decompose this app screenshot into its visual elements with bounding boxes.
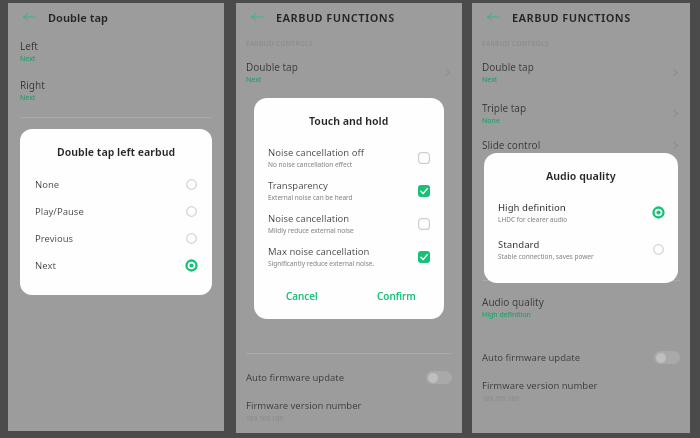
staticText: Auto firmware update (482, 351, 654, 364)
staticText: Triple tap (482, 101, 527, 115)
staticText: Double tap (246, 60, 298, 74)
staticText: Next (246, 75, 262, 85)
staticText: Audio quality (482, 295, 544, 309)
button[interactable]: Firmware version number (236, 399, 462, 423)
button[interactable]: Next (20, 252, 212, 279)
staticText: Transparency (268, 179, 328, 192)
button[interactable]: Audio quality (472, 291, 690, 324)
button[interactable]: Noise cancellation (254, 207, 444, 240)
button[interactable]: Back (18, 6, 40, 28)
staticText: Left (20, 39, 38, 53)
other: Back (250, 10, 264, 24)
staticText: Next (482, 75, 498, 85)
staticText: Previous (35, 232, 186, 245)
staticText: High definition (482, 310, 531, 320)
staticText: Noise cancellation (268, 212, 350, 225)
button[interactable]: Back (482, 6, 504, 28)
button[interactable]: Right (8, 78, 224, 103)
staticText: EARBUD CONTROLS (482, 39, 549, 48)
other: Back (22, 10, 36, 24)
button[interactable]: Auto firmware update (236, 366, 462, 389)
button[interactable]: Standard (484, 234, 678, 265)
button[interactable]: Cancel (254, 283, 349, 309)
staticText: Double tap (48, 10, 109, 25)
staticText: Firmware version number (246, 399, 362, 412)
staticText: Mildly reduce external noise (268, 226, 354, 235)
staticText: Next (20, 93, 36, 103)
staticText: Auto firmware update (246, 371, 426, 384)
staticText: Cancel (286, 289, 318, 303)
staticText: LHDC for clearer audio (498, 215, 568, 224)
button[interactable]: Slide control (472, 138, 690, 152)
button[interactable]: Auto firmware update (472, 346, 690, 369)
staticText: 189.109.109 (482, 394, 519, 403)
button[interactable]: Play/Pause (20, 198, 212, 225)
staticText: Confirm (377, 289, 416, 303)
staticText: Max noise cancellation (268, 245, 370, 258)
staticText: None (35, 178, 186, 191)
staticText: Standard (498, 238, 540, 251)
staticText: Noise cancellation off (268, 146, 364, 159)
button[interactable]: High definition (484, 197, 678, 228)
staticText: EARBUD FUNCTIONS (276, 10, 395, 25)
button[interactable]: Auto firmware update toggle (426, 371, 452, 384)
staticText: Stable connection, saves power (498, 252, 594, 261)
button[interactable]: Noise cancellation off (254, 141, 444, 174)
staticText: 189.109.109 (246, 414, 283, 423)
other: Not selected (186, 206, 197, 217)
staticText: None (482, 116, 500, 126)
other: Not selected (653, 244, 664, 255)
staticText: High definition (498, 201, 566, 214)
button[interactable]: Double tap (236, 56, 462, 89)
staticText: Double tap left earbud (57, 145, 176, 159)
staticText: Right (20, 78, 45, 92)
button[interactable]: Back (246, 6, 268, 28)
staticText: External noise can be heard (268, 193, 353, 202)
button[interactable]: Confirm (349, 283, 444, 309)
other: Selected (186, 260, 197, 271)
staticText: EARBUD FUNCTIONS (512, 10, 631, 25)
other: Not selected (186, 233, 197, 244)
button[interactable]: Max noise cancellation (254, 240, 444, 273)
button[interactable]: Triple tap (472, 97, 690, 130)
staticText: Play/Pause (35, 205, 186, 218)
other: Back (486, 10, 500, 24)
button[interactable]: Auto firmware update toggle (654, 351, 680, 364)
staticText: Firmware version number (482, 379, 598, 392)
button[interactable]: Previous (20, 225, 212, 252)
staticText: Double tap (482, 60, 534, 74)
button[interactable]: Firmware version number (472, 379, 690, 403)
button[interactable]: Left (8, 39, 224, 64)
button[interactable]: Transparency (254, 174, 444, 207)
staticText: Touch and hold (309, 114, 389, 128)
staticText: Significantly reduce external noise. (268, 259, 375, 268)
staticText: Next (20, 54, 36, 64)
other: Not selected (186, 179, 197, 190)
staticText: Slide control (482, 138, 671, 152)
staticText: EARBUD CONTROLS (246, 39, 313, 48)
staticText: Audio quality (546, 169, 616, 183)
staticText: No noise cancellation effect (268, 160, 353, 169)
button[interactable]: None (20, 171, 212, 198)
other: Selected (653, 207, 664, 218)
button[interactable]: Double tap (472, 56, 690, 89)
staticText: Next (35, 259, 186, 272)
